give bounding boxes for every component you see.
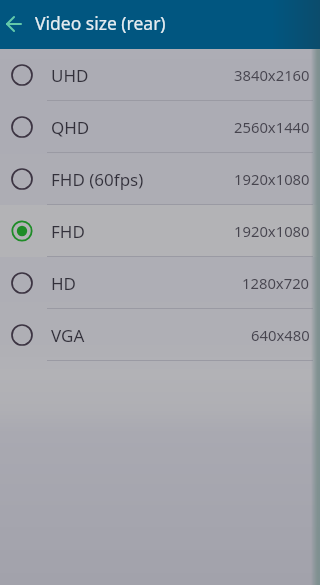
staticText: VGA (51, 324, 85, 347)
staticText: 3840x2160 (234, 65, 310, 85)
staticText: QHD (51, 116, 90, 139)
staticText: 640x480 (251, 325, 310, 345)
button[interactable]: Navigate up (0, 1, 35, 49)
staticText: 1920x1080 (234, 221, 310, 241)
button[interactable]: QHD (0, 101, 320, 153)
staticText: FHD (51, 220, 85, 243)
staticText: HD (51, 272, 77, 295)
button[interactable]: HD (0, 257, 320, 309)
button[interactable]: VGA (0, 309, 320, 361)
staticText: Video size (rear) (35, 11, 166, 35)
staticText: FHD (60fps) (51, 168, 144, 191)
button[interactable]: UHD (0, 49, 320, 101)
staticText: 1280x720 (242, 273, 310, 293)
staticText: UHD (51, 64, 89, 87)
staticText: 2560x1440 (234, 117, 310, 137)
button[interactable]: FHD (60fps) (0, 153, 320, 205)
staticText: 1920x1080 (234, 169, 310, 189)
button[interactable]: FHD (0, 205, 320, 257)
